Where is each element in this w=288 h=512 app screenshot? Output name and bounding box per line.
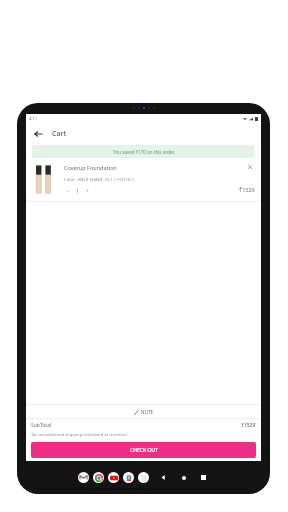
staticText: CHECK OUT (130, 447, 158, 454)
button[interactable]: Home (178, 472, 189, 483)
staticText: Cart (52, 129, 67, 139)
button[interactable]: App (123, 472, 134, 483)
button[interactable]: Back (158, 472, 169, 483)
button[interactable]: Back (31, 127, 45, 141)
staticText: Tax included and shipping calculated at … (31, 432, 128, 438)
button[interactable]: Decrease quantity (64, 187, 72, 195)
button[interactable]: CHECK OUT (31, 442, 256, 458)
staticText: You saved ₹170 on this order. (113, 149, 175, 155)
staticText: Color : MILK SHAKE 10.1 | FCU10-1 (64, 176, 134, 182)
staticText: NOTE (141, 409, 154, 415)
staticText: 1 (76, 188, 79, 195)
button[interactable]: Recents (198, 472, 209, 483)
staticText: ₹1529 (239, 186, 255, 193)
button[interactable]: Increase quantity (83, 187, 91, 195)
staticText: – (67, 188, 70, 195)
staticText: SubTotal (31, 422, 52, 429)
staticText: + (86, 188, 89, 195)
staticText: Coverup Foundation (64, 164, 117, 171)
staticText: ₹1529 (241, 422, 256, 429)
button[interactable]: App (108, 472, 119, 483)
button[interactable]: NOTE (26, 405, 261, 418)
button[interactable]: Remove item (245, 162, 255, 172)
button[interactable]: App (138, 472, 149, 483)
button[interactable]: App (78, 472, 89, 483)
staticText: 4:11 (29, 116, 37, 121)
button[interactable]: App (93, 472, 104, 483)
